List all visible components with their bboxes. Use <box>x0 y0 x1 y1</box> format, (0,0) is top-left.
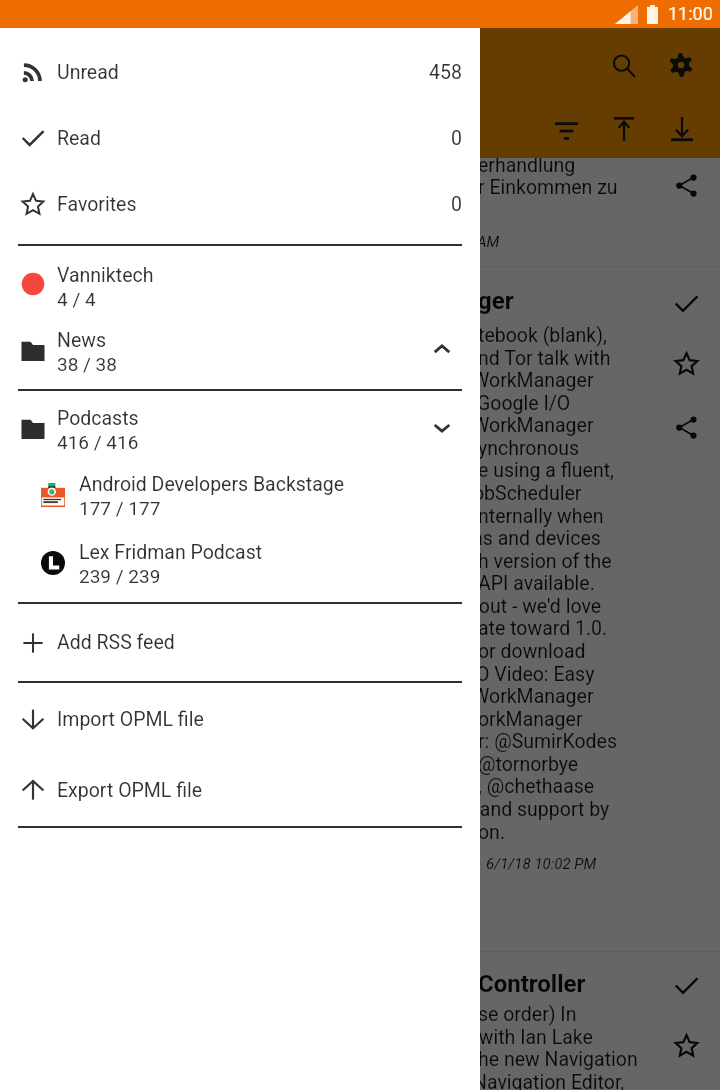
staticText: r: @SumirKodes <box>478 730 617 753</box>
staticText: Google I/O <box>477 392 571 415</box>
staticText: ynchronous <box>478 437 580 460</box>
button[interactable]: Download <box>671 117 693 139</box>
button[interactable]: Android Developers Backstage <box>0 462 480 527</box>
staticText: Navigation Editor, <box>473 1071 625 1090</box>
staticText: on. <box>478 821 506 844</box>
button[interactable]: Add RSS feed <box>0 604 480 681</box>
staticText: orkManager <box>478 708 583 731</box>
staticText: e using a fluent, <box>478 459 614 482</box>
button[interactable]: Mark as read <box>658 275 714 331</box>
staticText: AM <box>477 233 500 251</box>
staticText: , @chethaase <box>478 775 595 798</box>
staticText: Add RSS feed <box>57 631 175 654</box>
staticText: Import OPML file <box>57 708 204 731</box>
button[interactable]: Export OPML file <box>0 755 480 826</box>
button[interactable]: Settings <box>669 53 693 77</box>
button[interactable]: News <box>0 316 480 381</box>
button[interactable]: Favorite <box>658 335 714 391</box>
button[interactable]: Share <box>658 157 714 213</box>
staticText: out - we'd love <box>474 595 602 618</box>
staticText: erhandlung <box>478 154 576 177</box>
staticText: he new Navigation <box>478 1048 638 1071</box>
button[interactable]: Search <box>613 55 635 77</box>
button[interactable]: Favorites <box>0 171 480 237</box>
staticText: 4 / 4 <box>57 288 96 310</box>
staticText: WorkManager <box>472 685 594 708</box>
staticText: Lex Fridman Podcast <box>79 541 263 564</box>
button[interactable]: Read <box>0 105 480 171</box>
staticText: 38 / 38 <box>57 353 117 375</box>
button[interactable]: Unread <box>0 39 480 105</box>
button[interactable]: Mark as read <box>658 957 714 1013</box>
staticText: 0 <box>451 127 462 150</box>
staticText: obScheduler <box>473 482 582 505</box>
staticText: h version of the <box>478 550 612 573</box>
staticText: Podcasts <box>57 407 139 430</box>
button[interactable]: Expand <box>414 399 470 455</box>
staticText: nternally when <box>478 505 604 528</box>
staticText: 458 <box>429 61 462 84</box>
staticText: 6/1/18 10:02 PM <box>486 855 597 873</box>
staticText: nd Tor talk with <box>478 347 611 370</box>
staticText: WorkManager <box>472 369 594 392</box>
button[interactable]: Lex Fridman Podcast <box>0 527 480 598</box>
staticText: and support by <box>475 798 610 821</box>
staticText: 11:00 <box>668 3 713 24</box>
staticText: News <box>57 329 106 352</box>
staticText: Favorites <box>57 193 137 216</box>
staticText: with Ian Lake <box>474 1026 593 1049</box>
staticText: 0 <box>451 193 462 216</box>
staticText: Android Developers Backstage <box>79 473 345 496</box>
staticText: 416 / 416 <box>57 431 139 453</box>
button[interactable]: Favorite <box>658 1017 714 1073</box>
staticText: 239 / 239 <box>79 565 161 587</box>
staticText: Vanniktech <box>57 264 154 287</box>
staticText: WorkManager <box>472 414 594 437</box>
staticText: Export OPML file <box>57 779 203 802</box>
staticText: se order) In <box>478 1003 577 1026</box>
staticText: ger <box>478 287 514 315</box>
staticText: tebook (blank), <box>478 324 607 347</box>
staticText: Unread <box>57 61 119 84</box>
button[interactable]: Collapse <box>414 321 470 377</box>
staticText: Read <box>57 127 101 150</box>
staticText: 177 / 177 <box>79 497 161 519</box>
staticText: ate toward 1.0. <box>478 617 608 640</box>
button[interactable]: Import OPML file <box>0 683 480 755</box>
staticText: or download <box>478 640 586 663</box>
button[interactable]: Mark all read <box>614 117 634 137</box>
staticText: O Video: Easy <box>476 663 595 686</box>
button[interactable]: Podcasts <box>0 391 480 462</box>
staticText: r Einkommen zu <box>478 176 618 199</box>
staticText: Controller <box>478 970 586 998</box>
staticText: ns and devices <box>472 527 601 550</box>
staticText: @tornorbye <box>478 753 579 776</box>
button[interactable]: Vanniktech <box>0 251 480 316</box>
button[interactable]: Filter <box>555 120 578 143</box>
button[interactable]: Share <box>658 399 714 455</box>
staticText: API available. <box>478 572 595 595</box>
